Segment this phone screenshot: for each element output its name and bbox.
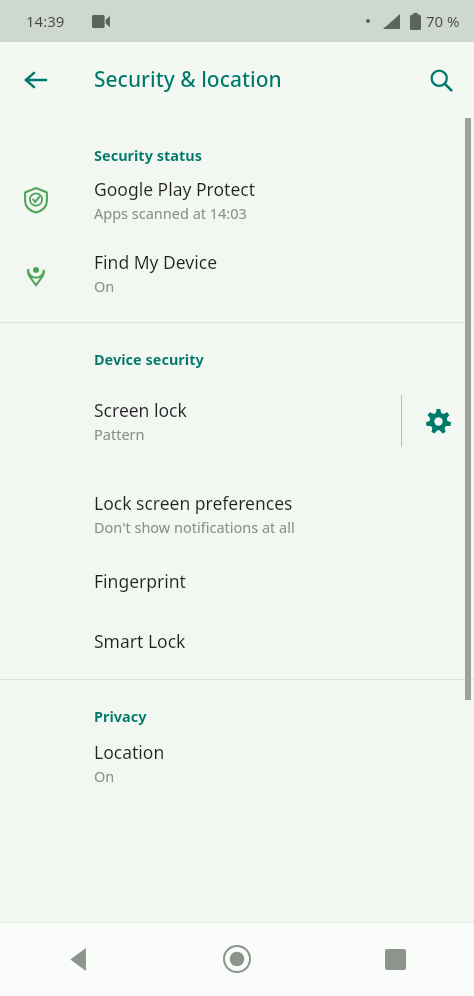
staticText: Apps scanned at 14:03 [94, 203, 247, 223]
staticText: On [94, 766, 115, 786]
staticText: Lock screen preferences [94, 491, 293, 515]
staticText: Device security [94, 349, 204, 369]
button[interactable]: Location [0, 740, 474, 786]
button[interactable]: Fingerprint [0, 569, 474, 593]
staticText: 70 % [426, 11, 460, 31]
button[interactable]: Smart Lock [0, 629, 474, 653]
staticText: Security status [94, 145, 202, 165]
button[interactable]: Search [417, 56, 465, 104]
button[interactable]: Screen lock settings [402, 383, 474, 459]
staticText: On [94, 276, 115, 296]
staticText: Smart Lock [94, 629, 186, 653]
button[interactable]: Back [12, 56, 60, 104]
staticText: Fingerprint [94, 569, 186, 593]
staticText: Find My Device [94, 250, 218, 274]
staticText: Security & location [94, 65, 282, 94]
button[interactable]: Find My Device [0, 250, 474, 296]
button[interactable]: Google Play Protect [0, 177, 474, 223]
button[interactable]: Lock screen preferences [0, 491, 474, 537]
button[interactable]: Screen lock [0, 383, 401, 459]
staticText: Screen lock [94, 398, 187, 422]
button[interactable]: Back [0, 922, 158, 996]
staticText: Google Play Protect [94, 177, 255, 201]
button[interactable]: Home [158, 922, 316, 996]
staticText: Pattern [94, 424, 145, 444]
staticText: Location [94, 740, 165, 764]
staticText: 14:39 [26, 11, 65, 31]
button[interactable]: Recent apps [316, 922, 474, 996]
staticText: Don't show notifications at all [94, 517, 295, 537]
staticText: Privacy [94, 706, 147, 726]
